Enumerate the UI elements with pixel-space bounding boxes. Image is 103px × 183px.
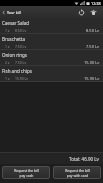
staticText: Onion rings <box>2 52 27 58</box>
staticText: 15.00 Lv <box>84 60 100 65</box>
staticText: 12:38 <box>91 1 101 6</box>
staticText: 7.50 Lv <box>86 44 100 49</box>
button[interactable]: Fish and chips <box>0 66 103 82</box>
staticText: 1 x <box>5 76 10 81</box>
button[interactable]: Clear bill <box>87 6 99 18</box>
staticText: Request the bill pay with card <box>65 168 90 178</box>
staticText: Your bill <box>7 10 21 15</box>
button[interactable]: Request the bill pay cash <box>2 166 50 179</box>
staticText: 7.50 Lv <box>15 60 27 65</box>
staticText: 1 x <box>5 44 10 49</box>
staticText: 15.90 Lv <box>84 76 100 81</box>
staticText: 15.90 Lv <box>15 76 29 81</box>
staticText: 2 x <box>5 60 10 65</box>
button[interactable]: Request the bill pay with card <box>53 166 101 179</box>
staticText: Request the bill pay cash <box>14 168 39 178</box>
other: Back <box>2 10 5 15</box>
staticText: 1 x <box>5 28 10 33</box>
staticText: 8.50 Lv <box>86 28 100 33</box>
staticText: Caesar Salad <box>2 20 30 26</box>
staticText: Fish and chips <box>2 68 32 74</box>
button[interactable]: Back <box>0 6 23 18</box>
button[interactable]: Bruschetta <box>0 34 103 50</box>
staticText: 8.50 Lv <box>15 28 27 33</box>
button[interactable]: Refresh <box>75 6 87 18</box>
button[interactable]: Onion rings <box>0 50 103 66</box>
button[interactable]: Caesar Salad <box>0 18 103 34</box>
staticText: Bruschetta <box>2 36 25 42</box>
staticText: 7.50 Lv <box>15 44 27 49</box>
staticText: Total: 46.90 Lv <box>69 156 99 162</box>
